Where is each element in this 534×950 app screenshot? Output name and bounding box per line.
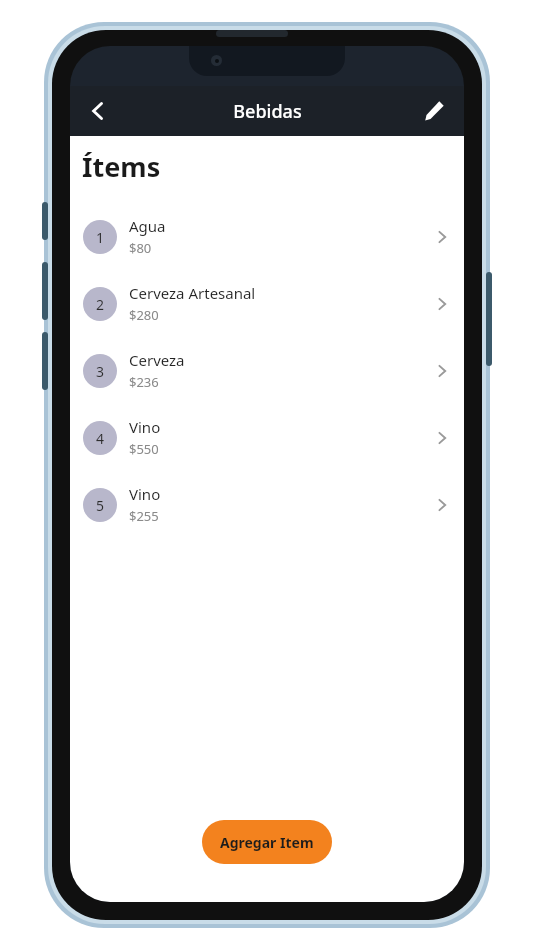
button[interactable]: Back xyxy=(76,89,120,133)
staticText: Vino xyxy=(129,417,161,437)
button[interactable]: 5 xyxy=(70,471,464,538)
staticText: $80 xyxy=(129,239,152,257)
button[interactable]: Agregar Item xyxy=(202,820,332,864)
staticText: $280 xyxy=(129,306,159,324)
staticText: 5 xyxy=(96,496,105,515)
staticText: 2 xyxy=(96,295,105,314)
button[interactable]: 4 xyxy=(70,404,464,471)
staticText: 4 xyxy=(96,429,105,448)
button[interactable]: 2 xyxy=(70,270,464,337)
staticText: Cerveza xyxy=(129,350,185,370)
staticText: Agregar Item xyxy=(220,833,314,852)
staticText: $236 xyxy=(129,373,159,391)
staticText: Agua xyxy=(129,216,166,236)
staticText: Vino xyxy=(129,484,161,504)
button[interactable]: 1 xyxy=(70,203,464,270)
staticText: 1 xyxy=(96,228,105,247)
staticText: $550 xyxy=(129,440,159,458)
staticText: $255 xyxy=(129,507,159,525)
button[interactable]: Edit xyxy=(412,89,456,133)
staticText: Cerveza Artesanal xyxy=(129,283,256,303)
button[interactable]: 3 xyxy=(70,337,464,404)
staticText: Bebidas xyxy=(233,99,302,124)
staticText: Ítems xyxy=(82,148,161,185)
staticText: 3 xyxy=(96,362,105,381)
